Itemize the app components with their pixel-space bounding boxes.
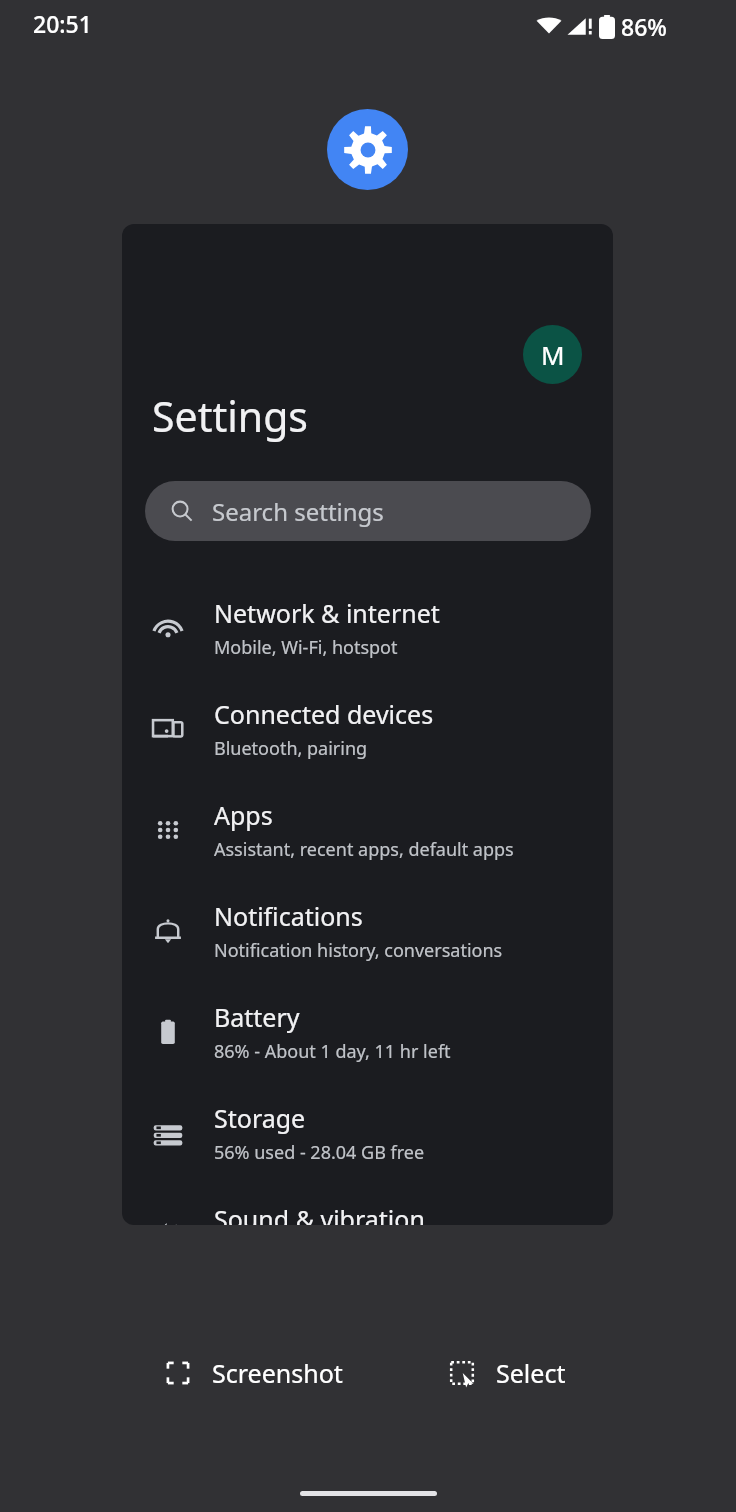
button[interactable]: Network & internet xyxy=(122,577,613,678)
button[interactable]: M xyxy=(122,224,613,1225)
button[interactable]: Screenshot xyxy=(160,1355,343,1391)
button[interactable]: Settings app xyxy=(327,109,408,190)
button[interactable]: Storage xyxy=(122,1082,613,1183)
staticText: Mobile, Wi-Fi, hotspot xyxy=(214,635,398,660)
staticText: Network & internet xyxy=(214,596,440,630)
staticText: Assistant, recent apps, default apps xyxy=(214,837,514,862)
staticText: Battery xyxy=(214,1000,300,1034)
button[interactable]: Apps xyxy=(122,779,613,880)
staticText: Settings xyxy=(152,388,309,444)
staticText: 20:51 xyxy=(33,8,92,39)
staticText: Search settings xyxy=(212,495,384,528)
staticText: Storage xyxy=(214,1101,306,1135)
staticText: Connected devices xyxy=(214,697,434,731)
staticText: Select xyxy=(496,1356,566,1390)
button[interactable]: Connected devices xyxy=(122,678,613,779)
button[interactable]: Search settings xyxy=(145,481,591,541)
button[interactable]: M xyxy=(523,325,582,384)
staticText: 86% - About 1 day, 11 hr left xyxy=(214,1039,451,1064)
staticText: M xyxy=(541,337,565,372)
staticText: Notifications xyxy=(214,899,363,933)
staticText: Apps xyxy=(214,798,273,832)
button[interactable]: Notifications xyxy=(122,880,613,981)
button[interactable]: Battery xyxy=(122,981,613,1082)
staticText: Notification history, conversations xyxy=(214,938,503,963)
staticText: Sound & vibration xyxy=(214,1202,425,1225)
button[interactable]: Sound & vibration xyxy=(122,1183,613,1225)
staticText: Screenshot xyxy=(212,1356,343,1390)
staticText: 56% used - 28.04 GB free xyxy=(214,1140,425,1165)
button[interactable]: Select xyxy=(444,1355,566,1391)
staticText: 86% xyxy=(621,11,667,42)
staticText: Bluetooth, pairing xyxy=(214,736,368,761)
